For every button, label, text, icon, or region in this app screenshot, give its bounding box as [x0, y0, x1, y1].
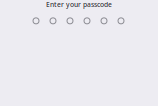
staticText: Enter your passcode — [46, 0, 112, 9]
button[interactable]: Passcode, 0 of 6 digits entered — [33, 18, 125, 24]
